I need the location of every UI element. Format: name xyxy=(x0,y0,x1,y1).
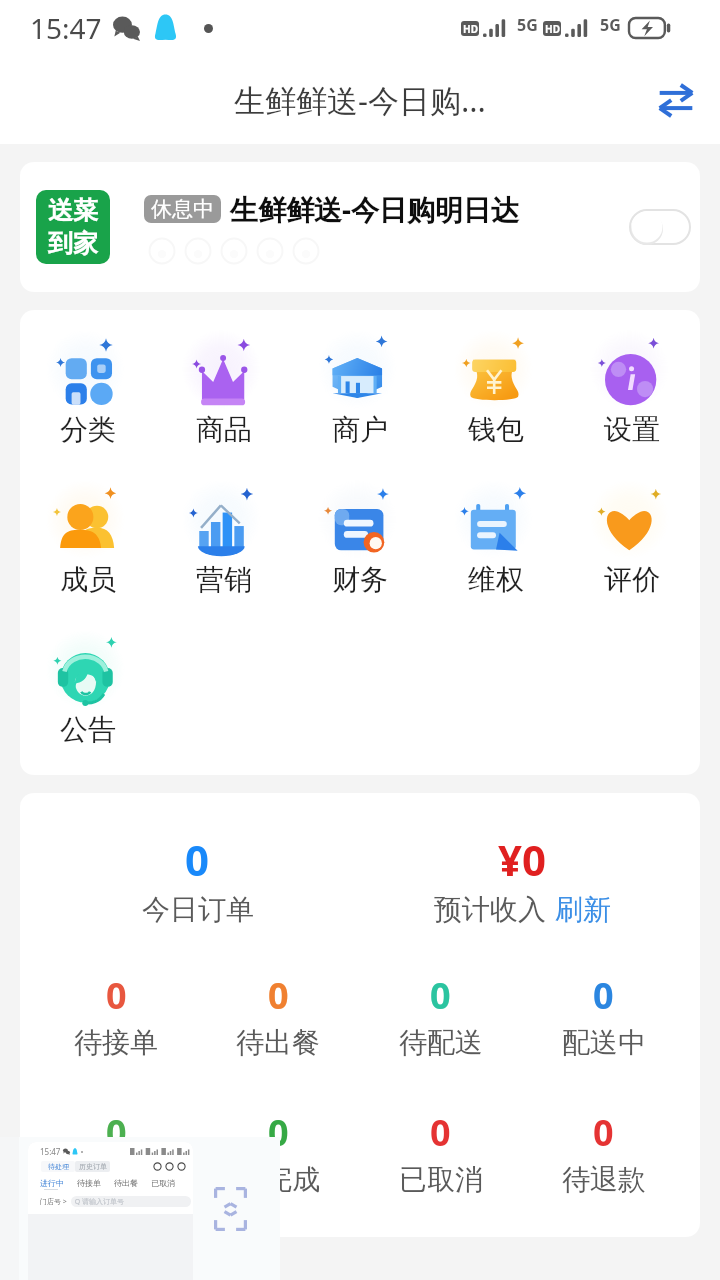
staticText: 待处理 xyxy=(48,1162,69,1171)
staticText: 营销 xyxy=(196,562,252,597)
button[interactable]: 成员 xyxy=(20,472,156,622)
button[interactable]: 分类 xyxy=(20,322,156,472)
staticText: 0 xyxy=(185,831,210,888)
button[interactable]: 0 xyxy=(359,1108,522,1197)
staticText: 刷新 xyxy=(555,892,611,927)
staticText: 钱包 xyxy=(468,412,524,447)
button[interactable]: 公告 xyxy=(20,622,156,772)
staticText: Q 请输入订单号 xyxy=(71,1197,124,1207)
staticText: 休息中 xyxy=(151,196,214,222)
staticText: 已完成 xyxy=(236,1162,320,1197)
staticText: 预计收入 xyxy=(434,892,546,927)
staticText: 5G xyxy=(600,14,621,36)
staticText: 送菜 xyxy=(48,195,98,226)
staticText: 已取消 xyxy=(399,1162,483,1197)
button[interactable]: ¥0 xyxy=(360,831,685,927)
staticText: 到家 xyxy=(48,228,98,259)
staticText: 成员 xyxy=(60,562,116,597)
staticText: 已取消 xyxy=(151,1178,175,1188)
staticText: 0 xyxy=(106,1108,127,1157)
staticText: 已送达 xyxy=(74,1162,158,1197)
staticText: 历史订单 xyxy=(79,1162,107,1171)
staticText: 今日订单 xyxy=(142,892,254,927)
button[interactable]: 调整窗口大小 xyxy=(214,1187,247,1231)
button[interactable]: 钱包 xyxy=(428,322,564,472)
button[interactable]: 财务 xyxy=(292,472,428,622)
staticText: 商户 xyxy=(332,412,388,447)
button[interactable]: 维权 xyxy=(428,472,564,622)
staticText: 设置 xyxy=(604,412,660,447)
staticText: 0 xyxy=(106,971,127,1020)
button[interactable]: 送菜 xyxy=(20,162,700,292)
staticText: 0 xyxy=(593,1108,614,1157)
staticText: 待出餐 xyxy=(114,1178,138,1188)
button[interactable]: 切换店铺 xyxy=(648,72,704,128)
staticText: 15:47 xyxy=(40,1146,61,1157)
staticText: 0 xyxy=(268,971,289,1020)
button[interactable]: 评价 xyxy=(564,472,700,622)
button[interactable]: 0 xyxy=(35,971,197,1060)
staticText: 生鲜鲜送-今日购明日达 xyxy=(230,190,519,228)
staticText: 0 xyxy=(593,971,614,1020)
staticText: 15:47 xyxy=(30,9,102,47)
staticText: HD xyxy=(545,22,560,36)
staticText: HD xyxy=(463,22,478,36)
staticText: 分类 xyxy=(60,412,116,447)
staticText: ¥0 xyxy=(498,831,547,888)
button[interactable]: 营业开关 xyxy=(629,209,691,245)
staticText: 进行中 xyxy=(40,1178,64,1188)
staticText: 待退款 xyxy=(562,1162,646,1197)
button[interactable]: 商品 xyxy=(156,322,292,472)
button[interactable]: 0 xyxy=(359,971,522,1060)
staticText: 门店号 > xyxy=(40,1197,67,1207)
staticText: 0 xyxy=(430,971,451,1020)
button[interactable]: 营销 xyxy=(156,472,292,622)
staticText: 生鲜鲜送-今日购... xyxy=(234,79,486,121)
staticText: 维权 xyxy=(468,562,524,597)
button[interactable]: 0 xyxy=(522,1108,685,1197)
button[interactable]: 0 xyxy=(35,831,360,927)
staticText: 0 xyxy=(430,1108,451,1157)
staticText: 配送中 xyxy=(562,1025,646,1060)
staticText: 待配送 xyxy=(399,1025,483,1060)
button[interactable]: 0 xyxy=(197,971,359,1060)
staticText: 公告 xyxy=(60,712,116,747)
staticText: 财务 xyxy=(332,562,388,597)
button[interactable]: 0 xyxy=(522,971,685,1060)
button[interactable]: 小窗预览 xyxy=(28,1142,193,1280)
staticText: 待出餐 xyxy=(236,1025,320,1060)
button[interactable]: 0 xyxy=(197,1108,359,1197)
button[interactable]: 商户 xyxy=(292,322,428,472)
staticText: 评价 xyxy=(604,562,660,597)
staticText: 商品 xyxy=(196,412,252,447)
button[interactable]: 0 xyxy=(35,1108,197,1197)
staticText: 待接单 xyxy=(77,1178,101,1188)
staticText: 待接单 xyxy=(74,1025,158,1060)
staticText: 5G xyxy=(517,14,538,36)
staticText: 0 xyxy=(268,1108,289,1157)
button[interactable]: 设置 xyxy=(564,322,700,472)
